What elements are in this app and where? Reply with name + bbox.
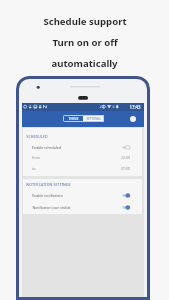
- button[interactable]: Notification icon visible: [23, 201, 142, 213]
- button[interactable]: from: [23, 152, 142, 163]
- staticText: SETTINGS: [86, 117, 101, 121]
- staticText: to: [32, 166, 36, 171]
- staticText: 22:00: [121, 155, 130, 160]
- staticText: SCHEDULED: [26, 134, 48, 139]
- button[interactable]: SETTINGS: [83, 115, 104, 122]
- button[interactable]: Account: [130, 116, 136, 122]
- staticText: Enable notification: [32, 193, 63, 198]
- staticText: THEME: [68, 117, 79, 121]
- staticText: Enable scheduled: [32, 145, 61, 150]
- button[interactable]: THEME: [63, 115, 83, 122]
- button[interactable]: to: [23, 163, 142, 174]
- staticText: Turn on or off: [52, 36, 118, 49]
- staticText: 07:00: [121, 166, 130, 171]
- staticText: Schedule support: [43, 15, 127, 28]
- staticText: Notification icon visible: [32, 205, 71, 210]
- staticText: automatically: [51, 57, 118, 70]
- staticText: 17:43: [129, 104, 141, 110]
- button[interactable]: Enable notification: [23, 189, 142, 201]
- button[interactable]: Enable scheduled: [23, 141, 142, 153]
- staticText: from: [32, 155, 40, 160]
- staticText: NOTIFICATION SETTINGS: [26, 182, 71, 187]
